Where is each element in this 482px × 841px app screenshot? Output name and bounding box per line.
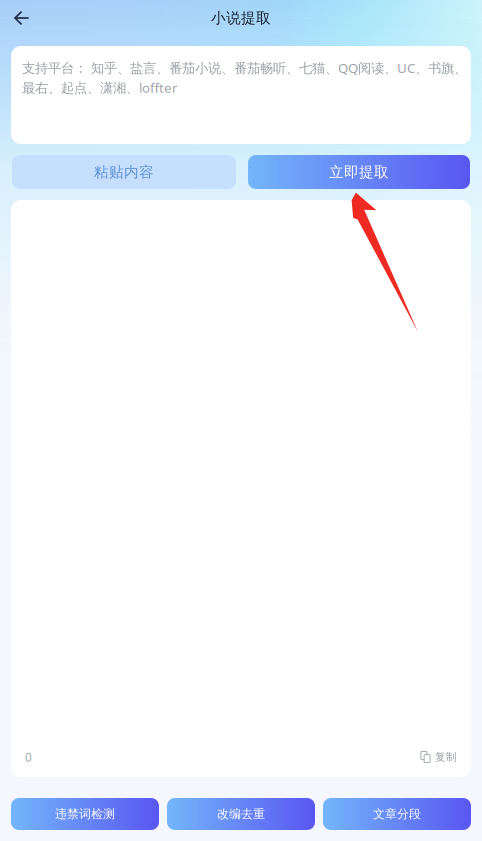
staticText: 小说提取 — [211, 9, 271, 27]
button[interactable]: 复制 — [420, 750, 457, 764]
staticText: 立即提取 — [329, 163, 389, 181]
button[interactable]: 文章分段 — [323, 798, 471, 830]
staticText: 0 — [25, 749, 32, 765]
staticText: 文章分段 — [373, 807, 421, 821]
button[interactable]: 违禁词检测 — [11, 798, 159, 830]
staticText: 最右、起点、潇湘、loffter — [22, 79, 178, 96]
button[interactable]: 粘贴内容 — [12, 155, 236, 189]
button[interactable]: 立即提取 — [248, 155, 470, 189]
staticText: 改编去重 — [217, 807, 265, 821]
staticText: 违禁词检测 — [55, 807, 115, 821]
button[interactable]: Back — [0, 1, 44, 35]
staticText: 复制 — [435, 750, 457, 764]
button[interactable]: 改编去重 — [167, 798, 315, 830]
staticText: 粘贴内容 — [94, 163, 154, 181]
staticText: 支持平台： 知乎、盐言、番茄小说、番茄畅听、七猫、QQ阅读、UC、书旗、 — [22, 59, 467, 77]
